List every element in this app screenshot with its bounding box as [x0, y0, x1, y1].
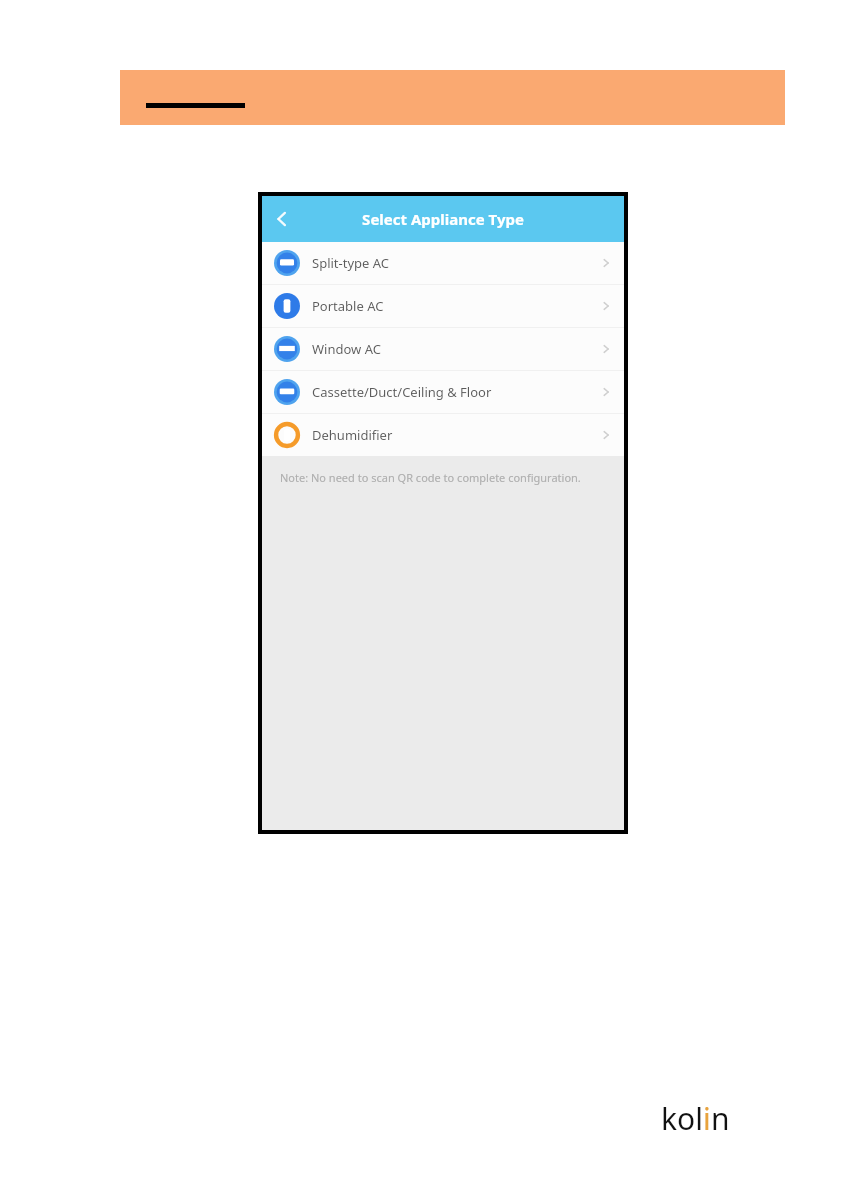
- staticText: Split-type AC: [312, 254, 390, 272]
- button[interactable]: Back: [262, 199, 302, 239]
- staticText: kol: [661, 1098, 703, 1139]
- staticText: Note: No need to scan QR code to complet…: [280, 470, 581, 485]
- staticText: Dehumidifier: [312, 426, 393, 444]
- button[interactable]: Dehumidifier: [262, 414, 624, 456]
- button[interactable]: Window AC: [262, 328, 624, 370]
- button[interactable]: Cassette/Duct/Ceiling & Floor: [262, 371, 624, 413]
- staticText: Window AC: [312, 340, 381, 358]
- staticText: Cassette/Duct/Ceiling & Floor: [312, 383, 492, 401]
- staticText: Select Appliance Type: [362, 209, 524, 229]
- staticText: Portable AC: [312, 297, 384, 315]
- staticText: n: [711, 1098, 730, 1139]
- button[interactable]: Split-type AC: [262, 242, 624, 284]
- button[interactable]: Portable AC: [262, 285, 624, 327]
- staticText: i: [703, 1098, 711, 1139]
